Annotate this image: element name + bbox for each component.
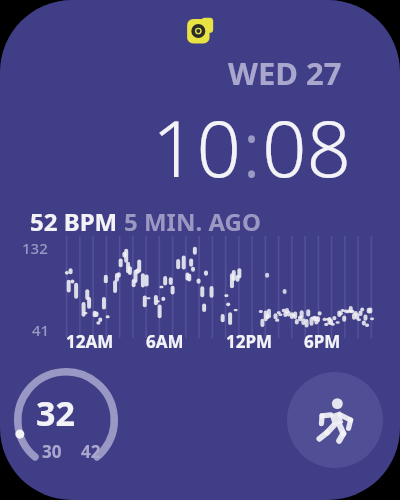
staticText: 42 (81, 440, 101, 463)
staticText: 52 BPM (30, 205, 124, 238)
staticText: 30 (42, 440, 62, 463)
staticText: 6AM (146, 330, 184, 353)
staticText: 12PM (226, 330, 273, 353)
staticText: 08 (262, 94, 352, 200)
staticText: 132 (22, 238, 48, 258)
button[interactable]: 32 (14, 368, 130, 478)
button[interactable]: 52 BPM (18, 200, 382, 348)
staticText: 12AM (66, 330, 114, 353)
staticText: 5 MIN. AGO (124, 205, 261, 238)
staticText: WED 27 (228, 52, 342, 94)
staticText: 10 (152, 94, 242, 200)
button[interactable]: Walkie talkie (186, 16, 214, 46)
button[interactable]: WED 27 (228, 52, 342, 94)
staticText: 41 (32, 320, 50, 340)
staticText: 32 (36, 390, 75, 436)
staticText: : (242, 94, 262, 200)
staticText: 6PM (304, 330, 341, 353)
button[interactable]: Start workout (287, 372, 383, 468)
